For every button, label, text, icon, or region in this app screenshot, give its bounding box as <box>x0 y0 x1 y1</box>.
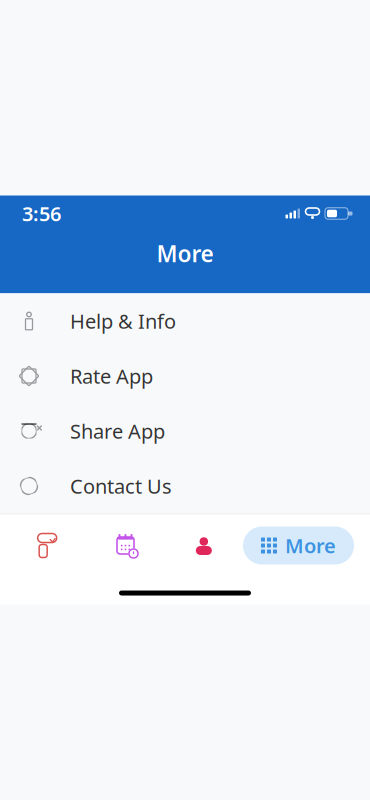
button[interactable]: Contact Us <box>0 458 370 513</box>
button[interactable]: Schedule <box>86 520 165 570</box>
button[interactable]: Profile <box>165 520 243 570</box>
staticText: Rate App <box>70 363 153 389</box>
button[interactable]: More <box>243 526 354 564</box>
staticText: Help & Info <box>70 308 176 334</box>
staticText: Contact Us <box>70 473 172 499</box>
button[interactable]: Rate App <box>0 348 370 403</box>
staticText: More <box>285 532 336 559</box>
staticText: More <box>156 238 213 268</box>
staticText: 3:56 <box>22 200 61 227</box>
button[interactable]: Check In <box>8 520 86 570</box>
button[interactable]: Help & Info <box>0 293 370 348</box>
button[interactable]: Share App <box>0 403 370 458</box>
staticText: Share App <box>70 418 165 444</box>
